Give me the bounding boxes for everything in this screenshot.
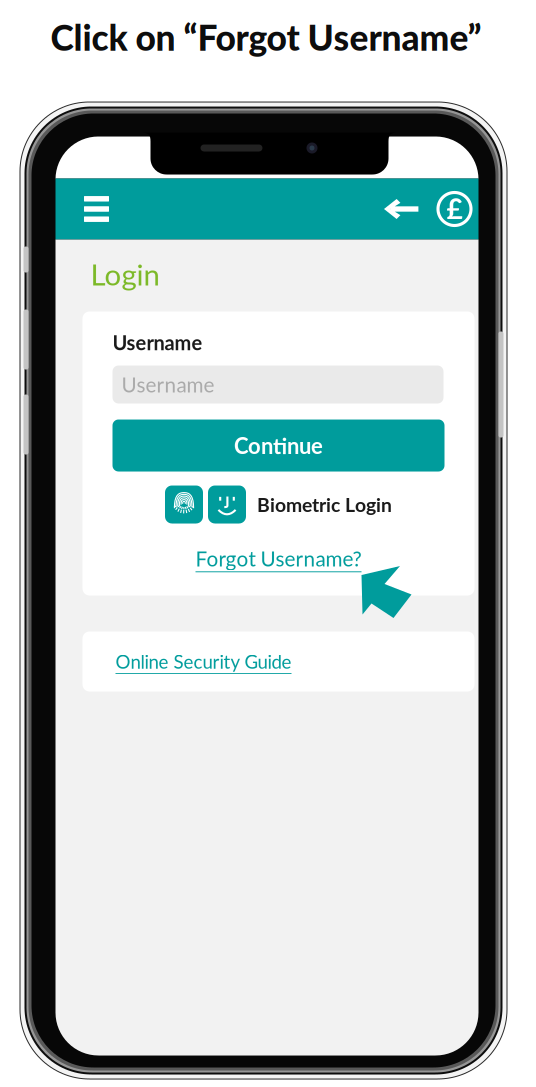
staticText: Username [112, 330, 202, 354]
staticText: Online Security Guide [115, 650, 291, 673]
button[interactable]: Menu [72, 178, 120, 239]
button[interactable]: Forgot Username? [112, 545, 444, 571]
staticText: Username [121, 372, 214, 397]
staticText: Biometric Login [257, 493, 392, 516]
button[interactable]: Back [377, 178, 425, 239]
staticText: Login [90, 256, 159, 292]
button[interactable]: Biometric Login [112, 485, 444, 523]
button[interactable]: Continue [112, 419, 444, 471]
staticText: Forgot Username? [195, 546, 361, 571]
button[interactable]: Account [430, 178, 478, 239]
staticText: Continue [234, 432, 323, 459]
staticText: Click on “Forgot Username” [50, 16, 481, 58]
staticText: £ [446, 192, 462, 225]
button[interactable]: Online Security Guide [82, 631, 474, 691]
